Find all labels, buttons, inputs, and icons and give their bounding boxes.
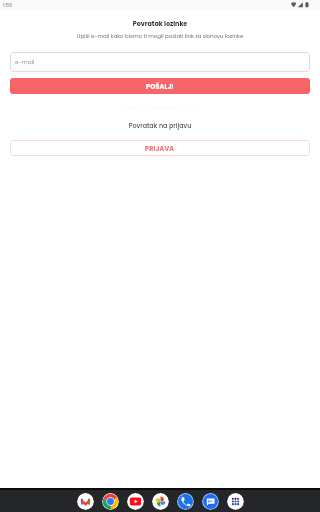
button[interactable]: YouTube: [127, 493, 144, 510]
button[interactable]: Gmail: [77, 493, 94, 510]
button[interactable]: All apps: [227, 493, 244, 510]
staticText: Povratak na prijavu: [0, 121, 320, 130]
button[interactable]: PRIJAVA: [10, 140, 310, 156]
button[interactable]: Messages: [202, 493, 219, 510]
button[interactable]: POŠALJI: [10, 78, 310, 94]
staticText: e-mail: [15, 58, 35, 66]
button[interactable]: Photos: [152, 493, 169, 510]
staticText: 1:55: [3, 2, 13, 9]
button[interactable]: Phone: [177, 493, 194, 510]
staticText: Povratak lozinke: [0, 19, 320, 28]
button[interactable]: e-mail: [10, 52, 310, 72]
staticText: PRIJAVA: [145, 144, 175, 153]
button[interactable]: Chrome: [102, 493, 119, 510]
staticText: POŠALJI: [146, 82, 174, 91]
staticText: Upiši e-mail kako bismo ti mogli poslati…: [0, 32, 320, 40]
